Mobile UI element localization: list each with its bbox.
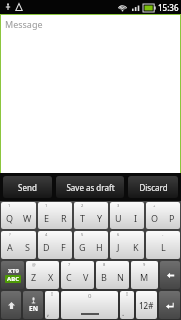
staticText: P bbox=[169, 212, 175, 224]
staticText: R bbox=[61, 212, 67, 224]
staticText: . bbox=[122, 307, 125, 318]
staticText: 7 bbox=[68, 262, 71, 267]
staticText: 6 bbox=[117, 232, 120, 237]
button[interactable]: F bbox=[55, 231, 72, 259]
staticText: C bbox=[66, 271, 72, 283]
staticText: X bbox=[48, 271, 54, 283]
staticText: B bbox=[101, 271, 107, 283]
button[interactable]: W bbox=[18, 202, 36, 229]
button[interactable]: @ bbox=[26, 261, 42, 289]
staticText: L bbox=[161, 241, 166, 253]
staticText: N bbox=[117, 271, 124, 283]
button[interactable]: XT9 input mode bbox=[1, 261, 24, 289]
button[interactable]: V bbox=[77, 261, 94, 289]
button[interactable]: Backspace bbox=[160, 261, 180, 289]
staticText: G bbox=[79, 241, 86, 253]
staticText: E bbox=[44, 212, 50, 224]
button[interactable]: 6 bbox=[110, 231, 127, 259]
staticText: Q bbox=[6, 212, 14, 224]
staticText: EN bbox=[29, 304, 38, 313]
staticText: O bbox=[151, 212, 159, 224]
button[interactable]: ? bbox=[1, 231, 18, 259]
staticText: S bbox=[25, 241, 30, 253]
staticText: Save as draft bbox=[66, 182, 115, 193]
staticText: @ bbox=[32, 262, 36, 267]
staticText: K bbox=[133, 241, 139, 253]
staticText: W bbox=[23, 212, 32, 224]
staticText: I bbox=[134, 212, 138, 224]
button[interactable]: Message bbox=[5, 18, 181, 173]
button[interactable]: Y bbox=[91, 202, 108, 229]
button[interactable]: 8 bbox=[96, 261, 112, 289]
staticText: - bbox=[162, 232, 164, 237]
button[interactable]: + bbox=[146, 202, 163, 229]
button[interactable]: Shift bbox=[1, 291, 21, 319]
staticText: V bbox=[83, 271, 89, 283]
button[interactable]: Discard bbox=[128, 176, 178, 198]
button[interactable]: . bbox=[120, 291, 134, 319]
staticText: 8 bbox=[103, 262, 106, 267]
staticText: , bbox=[47, 307, 50, 318]
button[interactable]: N bbox=[112, 261, 129, 289]
button[interactable]: Space bbox=[61, 291, 118, 319]
button[interactable]: K bbox=[127, 231, 144, 259]
button[interactable]: P bbox=[163, 202, 180, 229]
staticText: H bbox=[96, 241, 103, 253]
button[interactable]: Send bbox=[3, 176, 52, 198]
staticText: 2 bbox=[81, 203, 84, 208]
button[interactable]: - bbox=[146, 231, 180, 259]
staticText: U bbox=[115, 212, 122, 224]
staticText: XT9 bbox=[8, 267, 19, 275]
staticText: 12# bbox=[139, 300, 154, 311]
staticText: F bbox=[61, 241, 66, 253]
staticText: 15:36 bbox=[158, 2, 179, 13]
button[interactable]: 3 bbox=[110, 202, 127, 229]
staticText: Message bbox=[5, 18, 43, 30]
staticText: 1 bbox=[8, 203, 11, 208]
button[interactable]: Voice input, English bbox=[23, 291, 43, 319]
button[interactable]: R bbox=[55, 202, 72, 229]
button[interactable]: S bbox=[18, 231, 36, 259]
staticText: Y bbox=[97, 212, 103, 224]
button[interactable]: 4 bbox=[38, 231, 55, 259]
button[interactable]: 2 bbox=[74, 202, 91, 229]
staticText: + bbox=[153, 203, 156, 208]
button[interactable]: X bbox=[42, 261, 59, 289]
staticText: M bbox=[140, 271, 149, 283]
staticText: Discard bbox=[139, 182, 168, 193]
staticText: 3 bbox=[117, 203, 120, 208]
button[interactable]: 1 bbox=[1, 202, 18, 229]
button[interactable]: I bbox=[127, 202, 144, 229]
button[interactable]: 1 bbox=[38, 202, 55, 229]
staticText: D bbox=[43, 241, 50, 253]
button[interactable]: 5 bbox=[74, 231, 91, 259]
staticText: 1 bbox=[45, 203, 48, 208]
button[interactable]: Enter bbox=[159, 291, 180, 319]
staticText: 4 bbox=[45, 232, 48, 237]
staticText: 5 bbox=[81, 232, 84, 237]
button[interactable]: 12# bbox=[136, 291, 157, 319]
staticText: 0 bbox=[88, 292, 92, 300]
staticText: A bbox=[7, 241, 13, 253]
button[interactable]: 9 bbox=[131, 261, 158, 289]
staticText: Send bbox=[18, 182, 37, 193]
button[interactable]: , bbox=[45, 291, 59, 319]
button[interactable]: H bbox=[91, 231, 108, 259]
staticText: T bbox=[80, 212, 86, 224]
button[interactable]: 7 bbox=[61, 261, 77, 289]
staticText: J bbox=[117, 241, 120, 253]
staticText: ABC bbox=[7, 275, 19, 283]
button[interactable]: Save as draft bbox=[56, 176, 124, 198]
staticText: 9 bbox=[143, 262, 146, 267]
staticText: ? bbox=[9, 232, 11, 237]
staticText: Z bbox=[31, 271, 37, 283]
